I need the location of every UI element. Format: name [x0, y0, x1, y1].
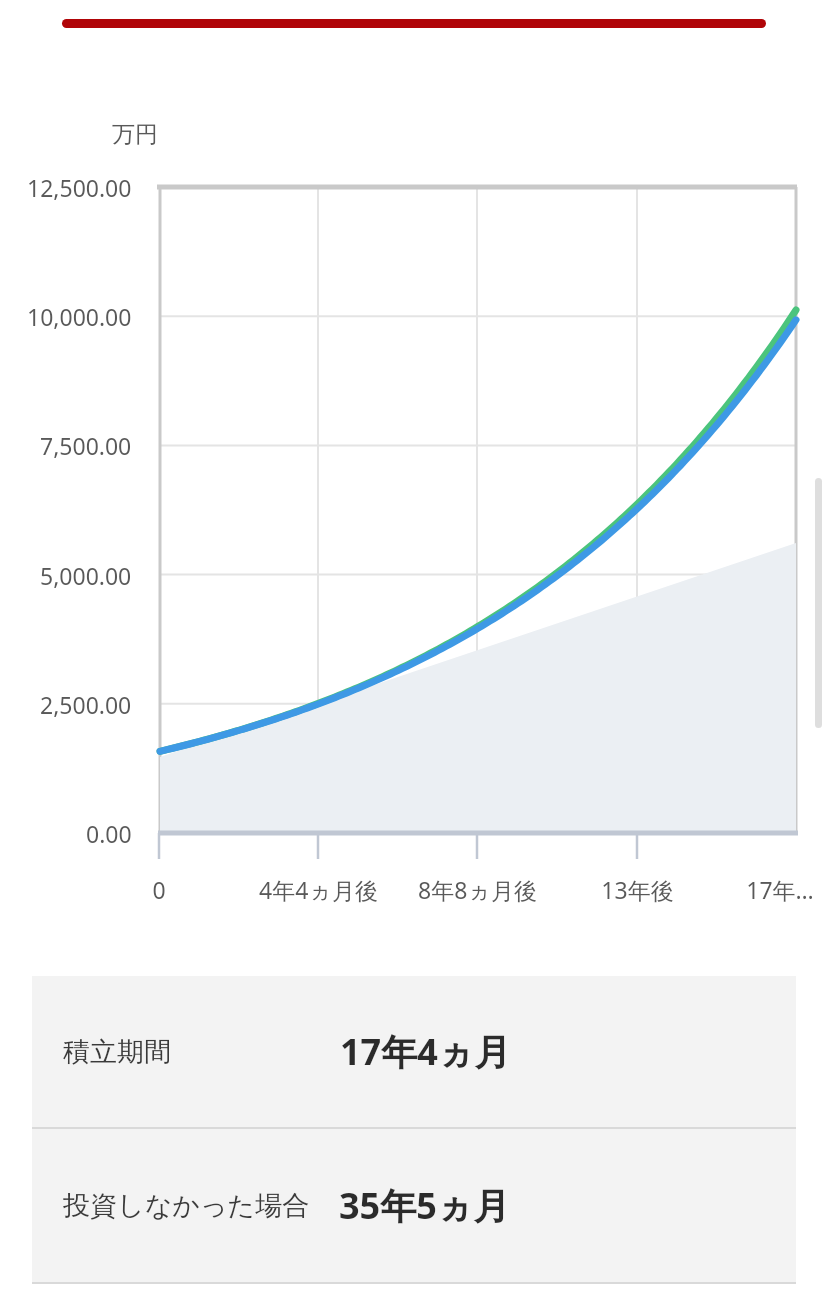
staticText: 8年8ヵ月後: [418, 874, 537, 905]
staticText: 12,500.00: [27, 172, 132, 203]
staticText: 4年4ヵ月後: [259, 874, 378, 905]
staticText: 13年後: [601, 874, 674, 905]
staticText: 0: [152, 874, 166, 905]
staticText: 17年4ヵ月: [340, 1027, 511, 1076]
button[interactable]: 積立期間: [32, 976, 796, 1127]
button[interactable]: 投資しなかった場合: [32, 1129, 796, 1282]
staticText: 7,500.00: [40, 430, 132, 461]
staticText: 35年5ヵ月: [339, 1181, 510, 1230]
staticText: 積立期間: [63, 1035, 171, 1069]
staticText: 万円: [112, 120, 158, 149]
staticText: 5,000.00: [40, 560, 132, 591]
staticText: 10,000.00: [27, 301, 132, 332]
staticText: 17年…: [746, 874, 814, 905]
staticText: 投資しなかった場合: [63, 1189, 310, 1223]
staticText: 2,500.00: [40, 689, 132, 720]
staticText: 0.00: [86, 818, 132, 849]
